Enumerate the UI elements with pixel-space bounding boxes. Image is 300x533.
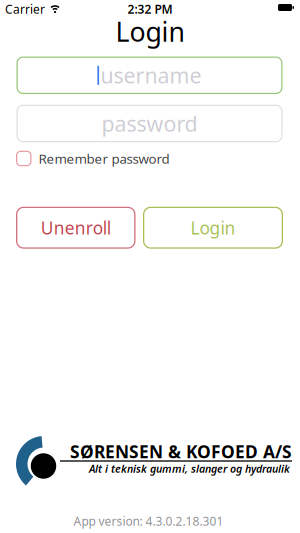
staticText: username bbox=[101, 61, 202, 89]
staticText: Carrier bbox=[5, 1, 45, 17]
button[interactable]: password bbox=[16, 105, 282, 142]
staticText: SØRENSEN & KOFOED A/S bbox=[70, 440, 292, 463]
staticText: Remember password bbox=[38, 150, 169, 167]
staticText: 2:32 PM bbox=[127, 1, 172, 17]
staticText: Alt i teknisk gummi, slanger og hydrauli… bbox=[89, 461, 290, 476]
staticText: Login bbox=[190, 216, 235, 239]
staticText: password bbox=[101, 109, 197, 138]
button[interactable]: username bbox=[16, 56, 282, 94]
staticText: App version: 4.3.0.2.18.301 bbox=[73, 513, 223, 529]
button[interactable]: Unenroll bbox=[16, 207, 135, 249]
staticText: Login bbox=[115, 14, 184, 49]
button[interactable]: Login bbox=[143, 207, 283, 249]
staticText: Unenroll bbox=[41, 216, 111, 239]
button[interactable]: Remember password bbox=[16, 150, 284, 167]
